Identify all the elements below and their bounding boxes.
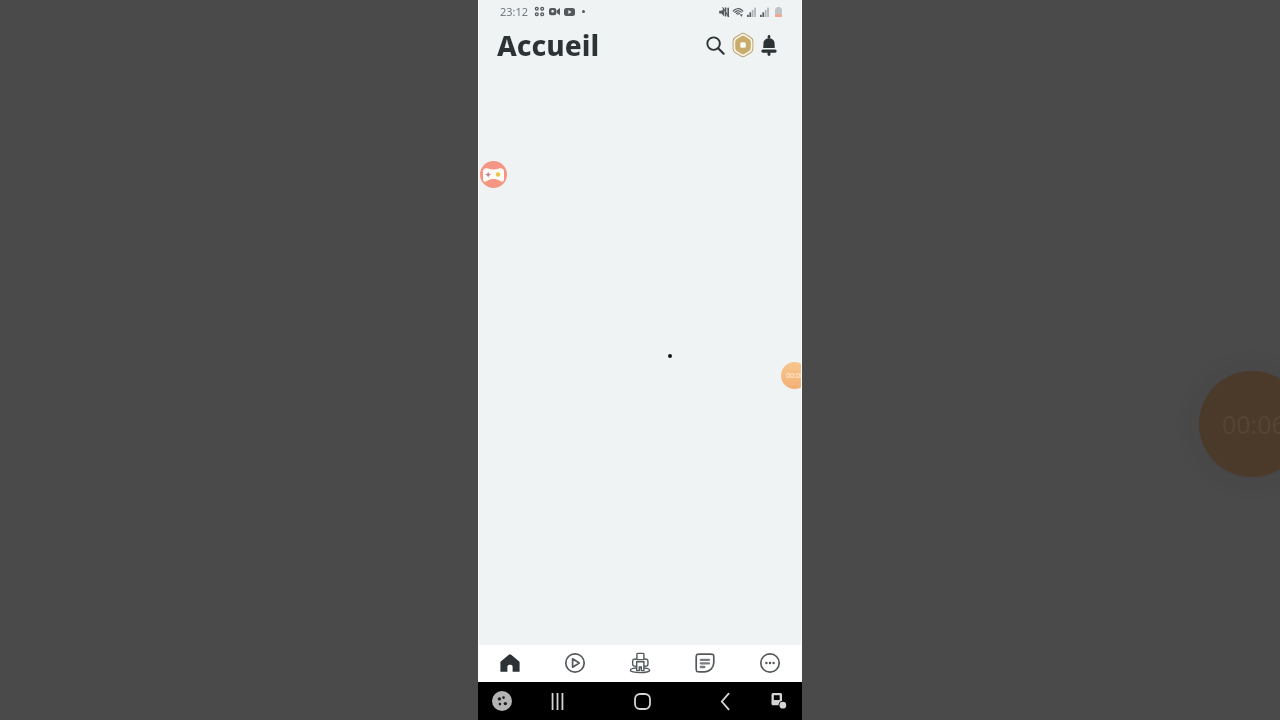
button[interactable]: Screenshot: [765, 687, 793, 715]
button[interactable]: Robux: [730, 32, 756, 58]
button[interactable]: Game avatar: [480, 161, 507, 188]
button[interactable]: Assistant: [492, 691, 512, 711]
button[interactable]: Search: [703, 33, 727, 57]
button[interactable]: Recents: [543, 687, 571, 715]
staticText: 00:06: [1222, 407, 1280, 441]
button[interactable]: Screen recorder timer: [781, 362, 802, 389]
button[interactable]: Home: [478, 645, 542, 682]
button[interactable]: Avatar: [607, 645, 672, 682]
button[interactable]: Home: [628, 687, 656, 715]
button[interactable]: Notifications: [757, 33, 781, 57]
button[interactable]: Charts: [542, 645, 607, 682]
button[interactable]: Back: [711, 687, 739, 715]
staticText: 23:12: [500, 4, 529, 19]
staticText: 00:06: [786, 371, 802, 381]
staticText: Accueil: [497, 26, 600, 64]
button[interactable]: Chat: [672, 645, 737, 682]
button[interactable]: More: [737, 645, 802, 682]
